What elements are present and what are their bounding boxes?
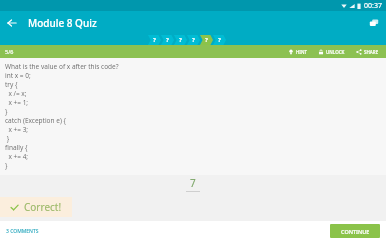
button[interactable]: HINT: [287, 48, 308, 56]
staticText: ?: [218, 36, 221, 44]
button[interactable]: Question: [161, 35, 174, 45]
staticText: x += 1;: [5, 98, 29, 107]
staticText: try {: [5, 80, 18, 89]
staticText: }: [5, 107, 8, 116]
button[interactable]: Correct!: [0, 197, 72, 217]
staticText: Correct!: [24, 200, 62, 214]
staticText: 5/6: [5, 48, 14, 55]
staticText: ?: [192, 36, 195, 44]
staticText: x += 3;: [5, 125, 29, 134]
staticText: catch (Exception e) {: [5, 116, 67, 125]
button[interactable]: Back: [0, 11, 24, 35]
button[interactable]: Question: [174, 35, 187, 45]
staticText: 7: [190, 176, 196, 190]
staticText: }: [5, 134, 10, 143]
staticText: ?: [166, 36, 169, 44]
staticText: }: [5, 161, 8, 170]
staticText: int x = 0;: [5, 71, 31, 80]
staticText: CONTINUE: [341, 228, 370, 235]
staticText: x += 4;: [5, 152, 29, 161]
staticText: ?: [205, 36, 208, 44]
button[interactable]: CONTINUE: [330, 224, 380, 238]
button[interactable]: Question: [213, 35, 226, 45]
staticText: 00:37: [364, 1, 382, 11]
staticText: finally {: [5, 143, 28, 152]
staticText: HINT: [296, 49, 307, 55]
button[interactable]: 3 COMMENTS: [0, 224, 43, 239]
staticText: SHARE: [364, 49, 379, 55]
button[interactable]: SHARE: [355, 48, 380, 56]
staticText: What is the value of x after this code?: [5, 62, 119, 71]
button[interactable]: Comments: [362, 11, 386, 35]
button[interactable]: UNLOCK: [317, 48, 346, 56]
staticText: x /= x;: [5, 89, 27, 98]
staticText: UNLOCK: [326, 49, 345, 55]
button[interactable]: Question: [200, 35, 213, 45]
button[interactable]: Question: [148, 35, 161, 45]
staticText: Module 8 Quiz: [28, 16, 97, 30]
staticText: ?: [179, 36, 182, 44]
staticText: ?: [153, 36, 156, 44]
button[interactable]: Question: [187, 35, 200, 45]
